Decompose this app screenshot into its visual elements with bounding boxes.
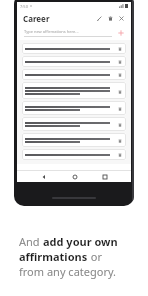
button[interactable]: Delete affirmation	[116, 71, 123, 78]
button[interactable]: Delete affirmation	[116, 151, 123, 158]
button[interactable]: Delete affirmation	[22, 149, 126, 160]
button[interactable]: Delete affirmation	[116, 105, 123, 112]
button[interactable]: Edit	[94, 13, 105, 24]
staticText: Type new affirmations here...	[24, 29, 79, 34]
button[interactable]: Delete affirmation	[22, 56, 126, 67]
button[interactable]: Close	[116, 13, 127, 24]
button[interactable]: Delete affirmation	[116, 137, 123, 144]
button[interactable]: Delete affirmation	[116, 45, 123, 52]
button[interactable]: Recent apps	[100, 172, 109, 181]
button[interactable]: Home	[70, 172, 79, 181]
staticText: from any category.	[19, 264, 117, 279]
staticText: add your own	[43, 234, 118, 249]
button[interactable]: Delete affirmation	[22, 82, 126, 99]
staticText: And	[19, 234, 43, 249]
button[interactable]: Add affirmation	[116, 28, 126, 38]
staticText: affirmations	[19, 249, 88, 264]
staticText: 7:50	[20, 4, 28, 9]
button[interactable]: Delete affirmation	[116, 58, 123, 65]
button[interactable]: Delete	[105, 13, 116, 24]
button[interactable]: Delete affirmation	[22, 133, 126, 147]
button[interactable]: Delete affirmation	[22, 117, 126, 131]
staticText: or	[88, 249, 103, 264]
button[interactable]: Delete affirmation	[22, 101, 126, 115]
button[interactable]: Back	[39, 172, 48, 181]
staticText: Career	[23, 13, 50, 24]
button[interactable]: Delete affirmation	[116, 88, 123, 95]
button[interactable]: Delete affirmation	[22, 69, 126, 80]
button[interactable]: Delete affirmation	[22, 43, 126, 54]
button[interactable]: Delete affirmation	[116, 121, 123, 128]
